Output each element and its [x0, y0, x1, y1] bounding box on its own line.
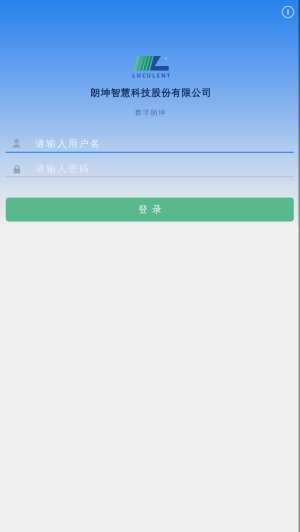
staticText: 请输入密码: [35, 163, 88, 174]
button[interactable]: 请输入用户名: [6, 131, 294, 153]
button[interactable]: 请输入密码: [6, 155, 294, 177]
staticText: 数字朗坤: [135, 108, 166, 117]
staticText: 登录: [138, 204, 161, 215]
button[interactable]: Info: [276, 0, 300, 24]
staticText: LUCULENT: [132, 72, 170, 79]
button[interactable]: 登录: [6, 197, 294, 221]
staticText: 朗坤智慧科技股份有限公司: [91, 87, 211, 99]
staticText: 请输入用户名: [35, 138, 99, 149]
